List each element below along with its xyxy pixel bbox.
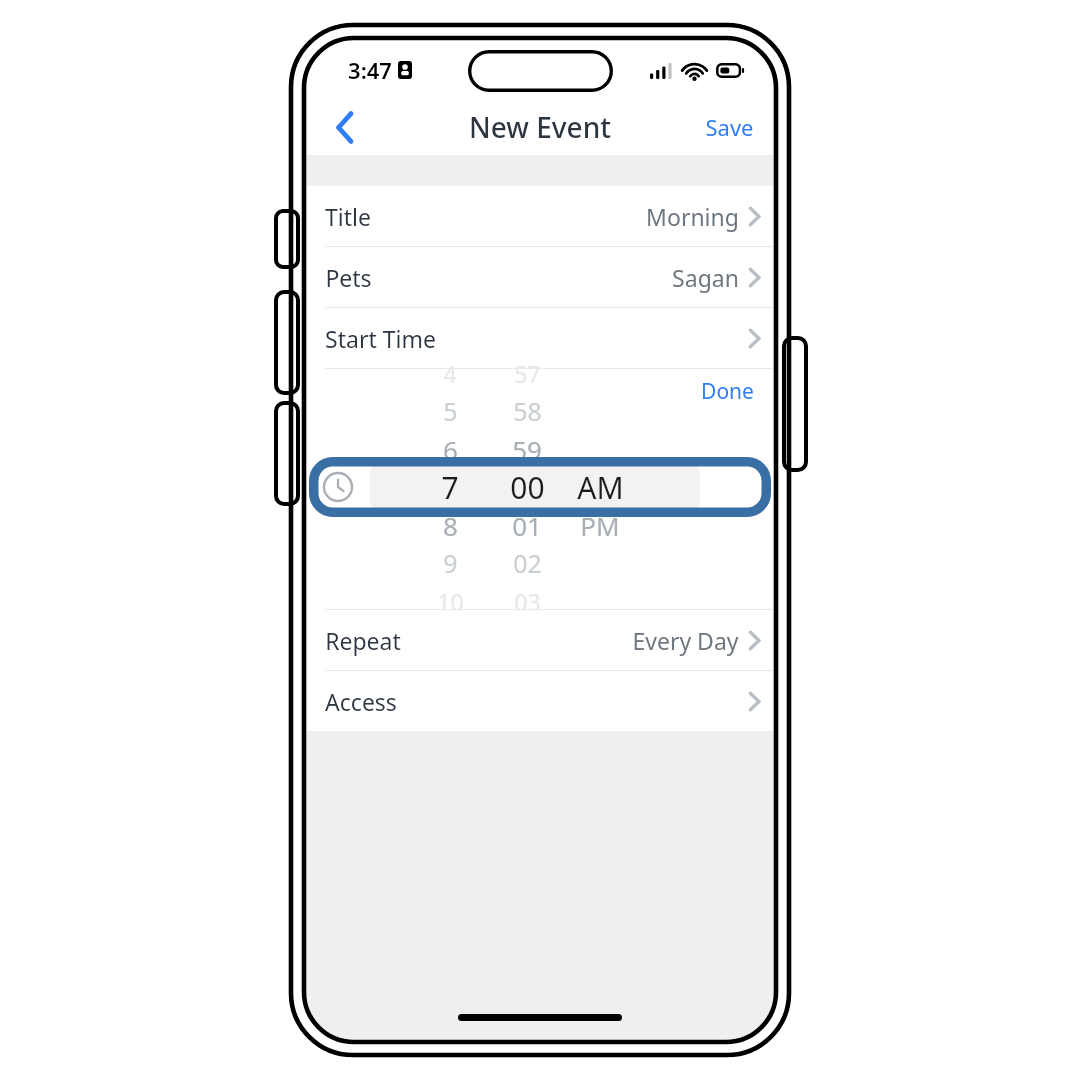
staticText: 59 [512,432,542,467]
staticText: Repeat [325,625,401,656]
button[interactable]: Back [320,102,370,152]
staticText: Sagan [672,262,739,293]
button[interactable]: Repeat [306,610,774,670]
staticText: 03 [514,586,541,617]
button[interactable]: Save [693,103,766,151]
staticText: Save [705,112,754,142]
staticText: 3:47 [348,55,392,85]
staticText: 5 [443,394,458,428]
staticText: PM [580,508,620,543]
staticText: Title [325,201,371,232]
staticText: Every Day [632,625,739,656]
staticText: 8 [443,508,458,543]
staticText: Morning [646,201,739,232]
button[interactable]: Pets [306,247,774,307]
staticText: 01 [512,508,542,543]
staticText: 9 [443,546,458,580]
staticText: AM [577,467,624,507]
staticText: 6 [443,432,458,467]
staticText: 57 [514,358,541,389]
staticText: Pets [325,262,372,293]
staticText: 58 [513,394,542,428]
staticText: 7 [441,467,459,507]
button[interactable]: Access [306,671,774,731]
staticText: 00 [510,467,545,507]
staticText: New Event [469,108,611,146]
staticText: Start Time [325,323,436,354]
staticText: 02 [513,546,542,580]
staticText: Access [325,686,397,717]
staticText: Done [701,377,754,406]
button[interactable]: Selected time 7 00 AM [309,457,771,517]
button[interactable]: Title [306,186,774,246]
staticText: 10 [437,586,464,617]
button[interactable]: Start Time [306,308,774,368]
button[interactable]: Done [689,371,766,412]
staticText: 4 [443,358,457,389]
